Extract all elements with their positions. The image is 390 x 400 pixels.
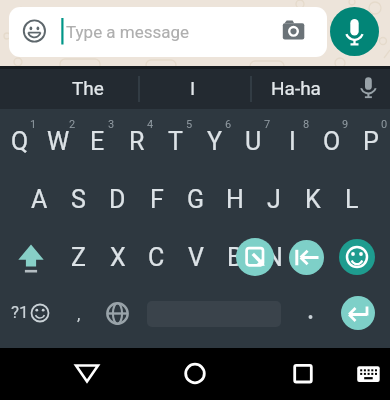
staticText: The xyxy=(72,77,104,99)
button[interactable]: ?1 xyxy=(0,283,59,341)
button[interactable] xyxy=(279,350,327,398)
button[interactable]: Z xyxy=(59,228,98,286)
button[interactable] xyxy=(63,350,111,398)
button[interactable]: V xyxy=(176,228,215,286)
staticText: 3 xyxy=(108,118,115,131)
staticText: K xyxy=(305,185,321,214)
staticText: N xyxy=(265,243,283,272)
staticText: H xyxy=(226,185,244,214)
button[interactable] xyxy=(0,225,59,283)
staticText: Type a message xyxy=(66,22,190,42)
button[interactable]: R xyxy=(117,112,156,170)
staticText: P xyxy=(363,127,379,156)
staticText: T xyxy=(168,127,183,156)
staticText: I xyxy=(289,127,296,156)
staticText: 4 xyxy=(147,118,154,131)
staticText: Q xyxy=(11,127,29,156)
button[interactable]: Y xyxy=(195,112,234,170)
staticText: Y xyxy=(207,127,223,156)
staticText: S xyxy=(71,185,86,214)
staticText: X xyxy=(110,243,126,272)
staticText: A xyxy=(31,185,48,214)
staticText: E xyxy=(90,127,105,156)
staticText: 1 xyxy=(30,118,37,131)
staticText: B xyxy=(227,243,243,272)
button[interactable] xyxy=(171,350,219,398)
button[interactable] xyxy=(293,283,332,341)
button[interactable] xyxy=(289,240,324,275)
staticText: G xyxy=(187,185,205,214)
button[interactable]: S xyxy=(59,170,98,228)
button[interactable] xyxy=(332,283,390,341)
button[interactable] xyxy=(330,7,379,56)
staticText: 2 xyxy=(69,118,76,131)
button[interactable]: A xyxy=(20,170,59,228)
button[interactable]: H xyxy=(215,170,254,228)
button[interactable]: X xyxy=(98,228,137,286)
staticText: L xyxy=(345,185,359,214)
button[interactable]: D xyxy=(98,170,137,228)
staticText: W xyxy=(47,127,70,156)
staticText: 9 xyxy=(342,118,349,131)
staticText: R xyxy=(129,127,145,156)
button[interactable]: I xyxy=(273,112,312,170)
staticText: O xyxy=(323,127,341,156)
button[interactable] xyxy=(339,239,375,275)
button[interactable]: L xyxy=(332,170,371,228)
button[interactable] xyxy=(293,228,332,286)
staticText: U xyxy=(245,127,262,156)
staticText: V xyxy=(188,243,204,272)
button[interactable]: C xyxy=(137,228,176,286)
staticText: I xyxy=(190,77,196,99)
button[interactable] xyxy=(236,238,274,276)
staticText: 8 xyxy=(303,118,310,131)
button[interactable]: F xyxy=(137,170,176,228)
button[interactable]: O xyxy=(312,112,351,170)
staticText: 5 xyxy=(186,118,193,131)
button[interactable] xyxy=(137,283,293,341)
button[interactable] xyxy=(98,283,137,341)
staticText: 6 xyxy=(225,118,232,131)
staticText: D xyxy=(109,185,126,214)
staticText: 0 xyxy=(381,118,388,131)
button[interactable]: N xyxy=(254,228,293,286)
button[interactable]: , xyxy=(59,283,98,341)
staticText: ?1 xyxy=(11,302,29,322)
staticText: 7 xyxy=(264,118,271,131)
button[interactable]: Q xyxy=(0,112,39,170)
button[interactable]: B xyxy=(215,228,254,286)
button[interactable]: E xyxy=(78,112,117,170)
button[interactable]: G xyxy=(176,170,215,228)
button[interactable]: U xyxy=(234,112,273,170)
button[interactable] xyxy=(344,350,390,398)
button[interactable]: Type a message xyxy=(9,7,327,57)
staticText: F xyxy=(150,185,164,214)
staticText: , xyxy=(77,304,81,324)
staticText: Ha-ha xyxy=(271,77,321,99)
button[interactable]: P xyxy=(351,112,390,170)
button[interactable]: J xyxy=(254,170,293,228)
button[interactable]: K xyxy=(293,170,332,228)
staticText: Z xyxy=(71,243,86,272)
button[interactable]: T xyxy=(156,112,195,170)
staticText: J xyxy=(267,185,281,214)
button[interactable]: W xyxy=(39,112,78,170)
staticText: C xyxy=(148,243,165,272)
